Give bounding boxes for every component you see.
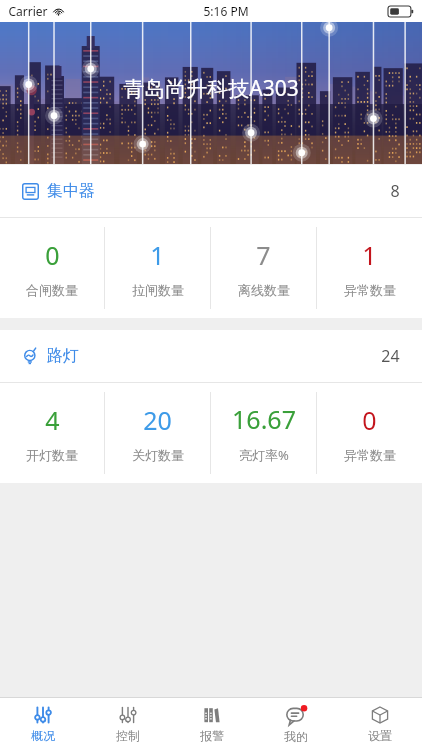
staticText: 1 [362,238,377,272]
staticText: 16.67 [232,402,296,436]
button[interactable]: 1 [105,218,210,318]
staticText: 5:16 PM [203,3,249,19]
staticText: 报警 [200,728,224,743]
button[interactable]: 7 [211,218,316,318]
button[interactable]: 概况 [0,698,85,750]
button[interactable]: 报警 [170,698,254,750]
staticText: 集中器 [47,181,95,201]
staticText: 设置 [368,728,392,743]
staticText: 合闸数量 [26,282,78,298]
staticText: 离线数量 [238,282,290,298]
staticText: 7 [256,238,271,272]
staticText: 拉闸数量 [132,282,184,298]
staticText: 青岛尚升科技A303 [123,74,299,103]
staticText: 异常数量 [344,447,396,463]
staticText: 1 [150,238,165,272]
staticText: 异常数量 [344,282,396,298]
staticText: 关灯数量 [132,447,184,463]
staticText: 24 [381,345,400,367]
button[interactable]: 我的 [254,698,338,750]
button[interactable]: 控制 [85,698,170,750]
button[interactable]: 集中器 [0,165,422,217]
button[interactable]: 设置 [338,698,422,750]
staticText: 20 [143,403,172,437]
staticText: 开灯数量 [26,447,78,463]
staticText: 4 [45,403,60,437]
staticText: 概况 [31,728,55,743]
button[interactable]: 1 [317,218,422,318]
staticText: 8 [390,180,400,202]
staticText: 我的 [284,729,308,744]
staticText: Carrier [8,3,48,19]
button[interactable]: 20 [105,383,210,483]
button[interactable]: 0 [0,218,104,318]
staticText: 0 [45,238,60,272]
button[interactable]: 16.67 [211,383,316,483]
staticText: 亮灯率% [239,446,289,464]
button[interactable]: 0 [317,383,422,483]
button[interactable]: 路灯 [0,330,422,382]
button[interactable]: 4 [0,383,104,483]
staticText: 0 [362,403,377,437]
staticText: 路灯 [47,346,79,366]
staticText: 控制 [116,728,140,743]
